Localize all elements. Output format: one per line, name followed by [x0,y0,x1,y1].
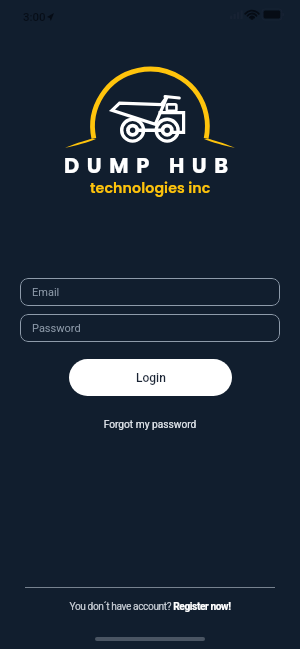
staticText: Password [32,322,81,335]
staticText: DUMP HUB [64,151,236,180]
staticText: technologies inc [90,178,211,198]
staticText: Email [32,286,60,299]
button[interactable]: You don´t have account? Register now! [0,601,300,613]
button[interactable]: Password [20,314,280,342]
staticText: Login [136,371,166,385]
button[interactable]: Forgot my password [0,419,300,431]
staticText: 3:00 [23,10,46,23]
button[interactable]: Login [69,359,232,396]
button[interactable]: Email [20,278,280,306]
